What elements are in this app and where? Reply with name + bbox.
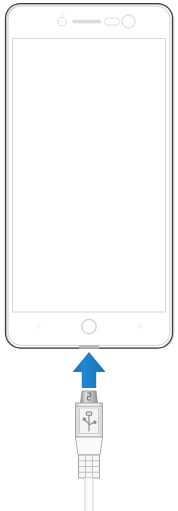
other: Connect the USB cable to your phone [0,0,178,511]
